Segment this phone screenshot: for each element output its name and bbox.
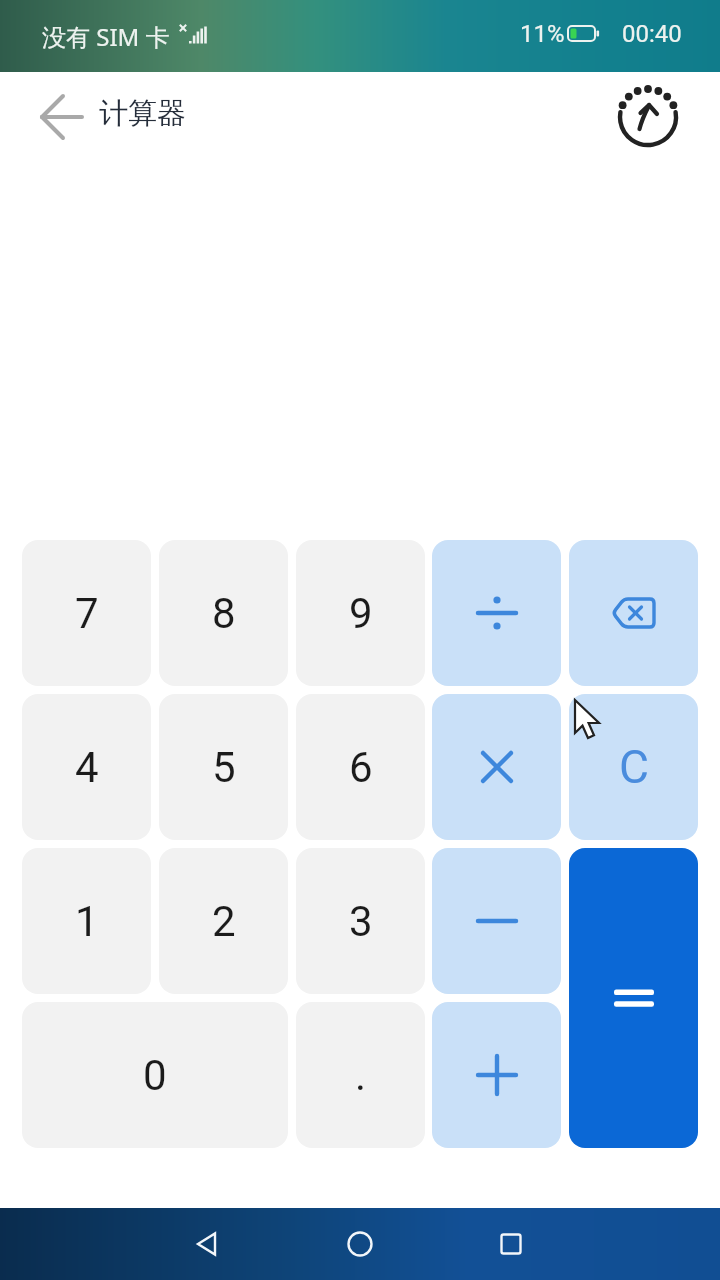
button[interactable] <box>330 1214 390 1274</box>
staticText: 7 <box>75 589 99 638</box>
staticText: . <box>355 1051 367 1100</box>
button[interactable]: 6 <box>296 694 425 840</box>
button[interactable] <box>432 1002 561 1148</box>
staticText: 计算器 <box>99 95 186 132</box>
button[interactable]: 2 <box>159 848 288 994</box>
button[interactable] <box>569 540 698 686</box>
button[interactable] <box>614 83 682 151</box>
button[interactable] <box>177 1214 237 1274</box>
button[interactable] <box>26 92 86 142</box>
staticText: 2 <box>212 897 236 946</box>
staticText: 没有 SIM 卡 <box>42 20 170 53</box>
button[interactable]: 7 <box>22 540 151 686</box>
staticText: 9 <box>349 589 373 638</box>
staticText: 5 <box>212 743 236 792</box>
button[interactable]: 9 <box>296 540 425 686</box>
button[interactable] <box>481 1214 541 1274</box>
button[interactable]: . <box>296 1002 425 1148</box>
staticText: 6 <box>349 743 373 792</box>
staticText: 8 <box>212 589 236 638</box>
button[interactable] <box>432 848 561 994</box>
button[interactable]: 8 <box>159 540 288 686</box>
button[interactable]: 0 <box>22 1002 288 1148</box>
button[interactable]: 4 <box>22 694 151 840</box>
button[interactable]: 3 <box>296 848 425 994</box>
staticText: 11% <box>520 20 565 48</box>
staticText: 4 <box>75 743 99 792</box>
staticText: C <box>619 740 649 794</box>
button[interactable]: 5 <box>159 694 288 840</box>
button[interactable] <box>432 694 561 840</box>
staticText: 0 <box>143 1051 167 1100</box>
button[interactable]: 1 <box>22 848 151 994</box>
button[interactable]: C <box>569 694 698 840</box>
button[interactable] <box>569 848 698 1148</box>
staticText: 1 <box>75 897 99 946</box>
staticText: 00:40 <box>622 20 682 48</box>
button[interactable] <box>432 540 561 686</box>
staticText: 3 <box>349 897 373 946</box>
